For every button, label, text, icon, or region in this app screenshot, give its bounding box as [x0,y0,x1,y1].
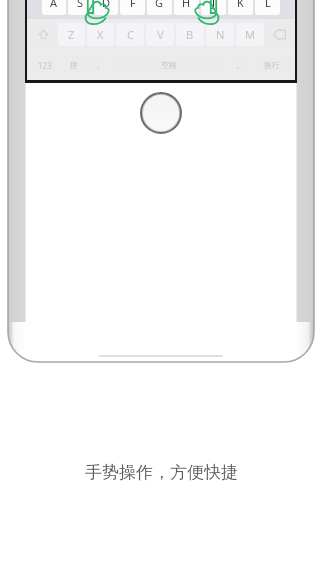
button[interactable]: K [228,0,253,15]
staticText: K [237,0,244,10]
staticText: G [155,0,164,10]
button[interactable]: Z [58,23,85,46]
staticText: V [157,27,164,42]
staticText: L [265,0,271,10]
button[interactable]: 拼 [63,54,85,76]
button[interactable]: D [94,0,118,15]
button[interactable]: C [116,23,144,46]
staticText: 拼 [70,60,78,70]
staticText: D [102,0,111,10]
button[interactable]: Key [30,23,56,46]
button[interactable]: 空格 [111,54,227,76]
button[interactable]: B [176,23,204,46]
staticText: B [186,27,194,42]
button[interactable]: S [68,0,92,15]
button[interactable]: Home [138,90,184,136]
button[interactable]: G [147,0,172,15]
button[interactable]: V [146,23,174,46]
button[interactable]: Key [266,23,292,46]
staticText: A [50,0,58,10]
staticText: N [216,27,225,42]
staticText: S [77,0,84,10]
staticText: X [97,27,104,42]
button[interactable]: A [42,0,66,15]
button[interactable]: 123 [31,54,59,76]
staticText: F [130,0,136,10]
staticText: 123 [38,60,52,71]
button[interactable]: L [255,0,280,15]
staticText: C [127,27,134,42]
button[interactable]: M [236,23,264,46]
button[interactable]: N [206,23,234,46]
staticText: ， [94,60,102,70]
staticText: H [182,0,191,10]
button[interactable]: X [87,23,114,46]
staticText: J [212,0,216,10]
staticText: 。 [236,60,244,70]
staticText: M [245,27,255,42]
button[interactable]: 换行 [253,54,291,76]
staticText: 换行 [264,60,280,70]
button[interactable]: H [174,0,199,15]
staticText: Z [68,27,75,42]
staticText: 空格 [161,60,177,70]
staticText: 手势操作，方便快捷 [85,462,238,483]
button[interactable]: F [120,0,145,15]
button[interactable]: J [201,0,226,15]
